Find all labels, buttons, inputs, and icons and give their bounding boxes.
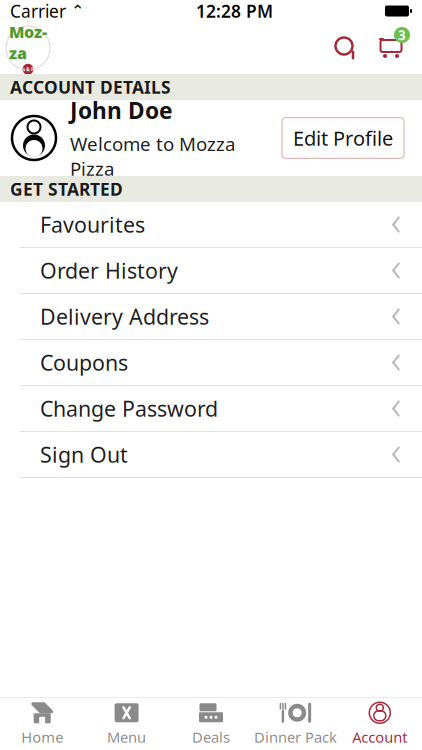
button[interactable]: Cart, 3 items (368, 26, 414, 70)
staticText: Home (21, 727, 63, 747)
button[interactable]: Delivery Address (0, 294, 422, 340)
button[interactable]: Order History (0, 248, 422, 294)
staticText: Pizza & Pasta (11, 66, 45, 73)
button[interactable]: Sign Out (0, 432, 422, 478)
staticText: 3 (398, 26, 406, 44)
staticText: ⌃ (66, 2, 84, 20)
button[interactable]: Home (0, 700, 84, 748)
staticText: Mozza (9, 21, 47, 64)
staticText: Order History (40, 256, 178, 285)
button[interactable]: Menu (84, 700, 169, 748)
staticText: Menu (107, 727, 146, 747)
button[interactable]: Search (324, 26, 368, 70)
button[interactable]: Mozza Pizza home (0, 26, 50, 70)
button[interactable]: Dinner Pack (253, 700, 338, 748)
button[interactable]: Favourites (0, 202, 422, 248)
staticText: Account (352, 727, 407, 747)
staticText: Welcome to Mozza Pizza (70, 131, 235, 181)
button[interactable]: Coupons (0, 340, 422, 386)
button[interactable]: Edit Profile (282, 118, 404, 158)
staticText: Edit Profile (293, 125, 393, 151)
staticText: Sign Out (40, 440, 128, 469)
staticText: John Doe (70, 95, 173, 125)
staticText: ACCOUNT DETAILS (10, 75, 171, 98)
staticText: Delivery Address (40, 302, 209, 331)
staticText: 12:28 PM (196, 0, 273, 22)
button[interactable]: Deals (169, 700, 253, 748)
button[interactable]: Change Password (0, 386, 422, 432)
staticText: Deals (192, 727, 230, 747)
staticText: Favourites (40, 210, 145, 239)
staticText: Carrier (10, 0, 66, 22)
staticText: Coupons (40, 348, 128, 377)
staticText: Change Password (40, 394, 218, 423)
staticText: Dinner Pack (254, 727, 337, 747)
staticText: GET STARTED (10, 177, 123, 200)
button[interactable]: Account (338, 700, 422, 748)
